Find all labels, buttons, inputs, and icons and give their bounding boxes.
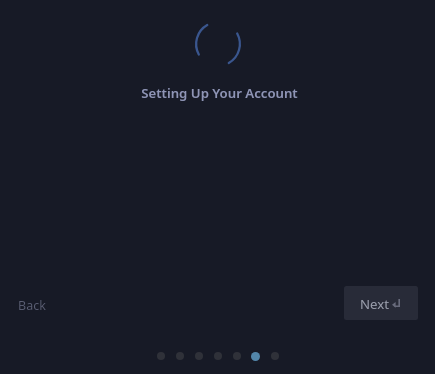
button[interactable]: Step 2 of 7 bbox=[170, 348, 189, 364]
other: Loading bbox=[195, 21, 241, 67]
button[interactable]: Step 3 of 7 bbox=[189, 348, 208, 364]
button[interactable]: Step 5 of 7 bbox=[227, 348, 246, 364]
button[interactable]: Back bbox=[10, 292, 54, 319]
staticText: Back bbox=[18, 297, 46, 314]
button[interactable]: Step 4 of 7 bbox=[208, 348, 227, 364]
button[interactable]: Next bbox=[344, 286, 418, 320]
staticText: Setting Up Your Account bbox=[141, 84, 298, 102]
staticText: Next bbox=[360, 295, 389, 313]
button[interactable]: Step 7 of 7 bbox=[265, 348, 284, 364]
button[interactable]: Step 1 of 7 bbox=[151, 348, 170, 364]
button[interactable]: Step 6 of 7 bbox=[246, 348, 265, 364]
